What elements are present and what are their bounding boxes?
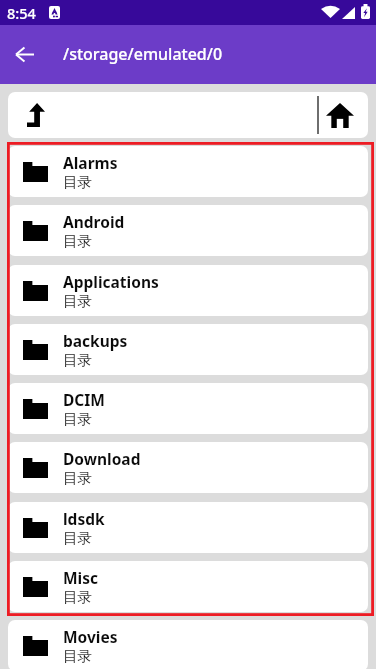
staticText: Download	[63, 448, 141, 469]
staticText: Movies	[63, 626, 118, 647]
staticText: 目录	[63, 410, 92, 428]
staticText: /storage/emulated/0	[63, 43, 223, 65]
staticText: Android	[63, 211, 125, 232]
button[interactable]: Home	[323, 98, 357, 132]
staticText: DCIM	[63, 389, 105, 410]
staticText: Alarms	[63, 152, 118, 173]
button[interactable]: Download	[8, 442, 368, 493]
staticText: Applications	[63, 271, 159, 292]
staticText: 目录	[63, 351, 92, 369]
button[interactable]: Up one level	[19, 98, 53, 132]
button[interactable]: backups	[8, 324, 368, 375]
button[interactable]: Applications	[8, 265, 368, 316]
button[interactable]: Alarms	[8, 146, 368, 197]
staticText: ldsdk	[63, 508, 105, 529]
button[interactable]: Android	[8, 205, 368, 256]
button[interactable]: Back	[10, 39, 40, 69]
staticText: 目录	[63, 588, 92, 606]
staticText: 目录	[63, 232, 92, 250]
staticText: 目录	[63, 173, 92, 191]
staticText: Misc	[63, 567, 99, 588]
staticText: 目录	[63, 469, 92, 487]
button[interactable]: ldsdk	[8, 502, 368, 553]
staticText: 目录	[63, 529, 92, 547]
staticText: 目录	[63, 647, 92, 665]
staticText: 目录	[63, 292, 92, 310]
button[interactable]: Misc	[8, 561, 368, 612]
button[interactable]: Movies	[8, 620, 368, 669]
staticText: 8:54	[7, 3, 36, 23]
staticText: backups	[63, 330, 128, 351]
button[interactable]: DCIM	[8, 383, 368, 434]
